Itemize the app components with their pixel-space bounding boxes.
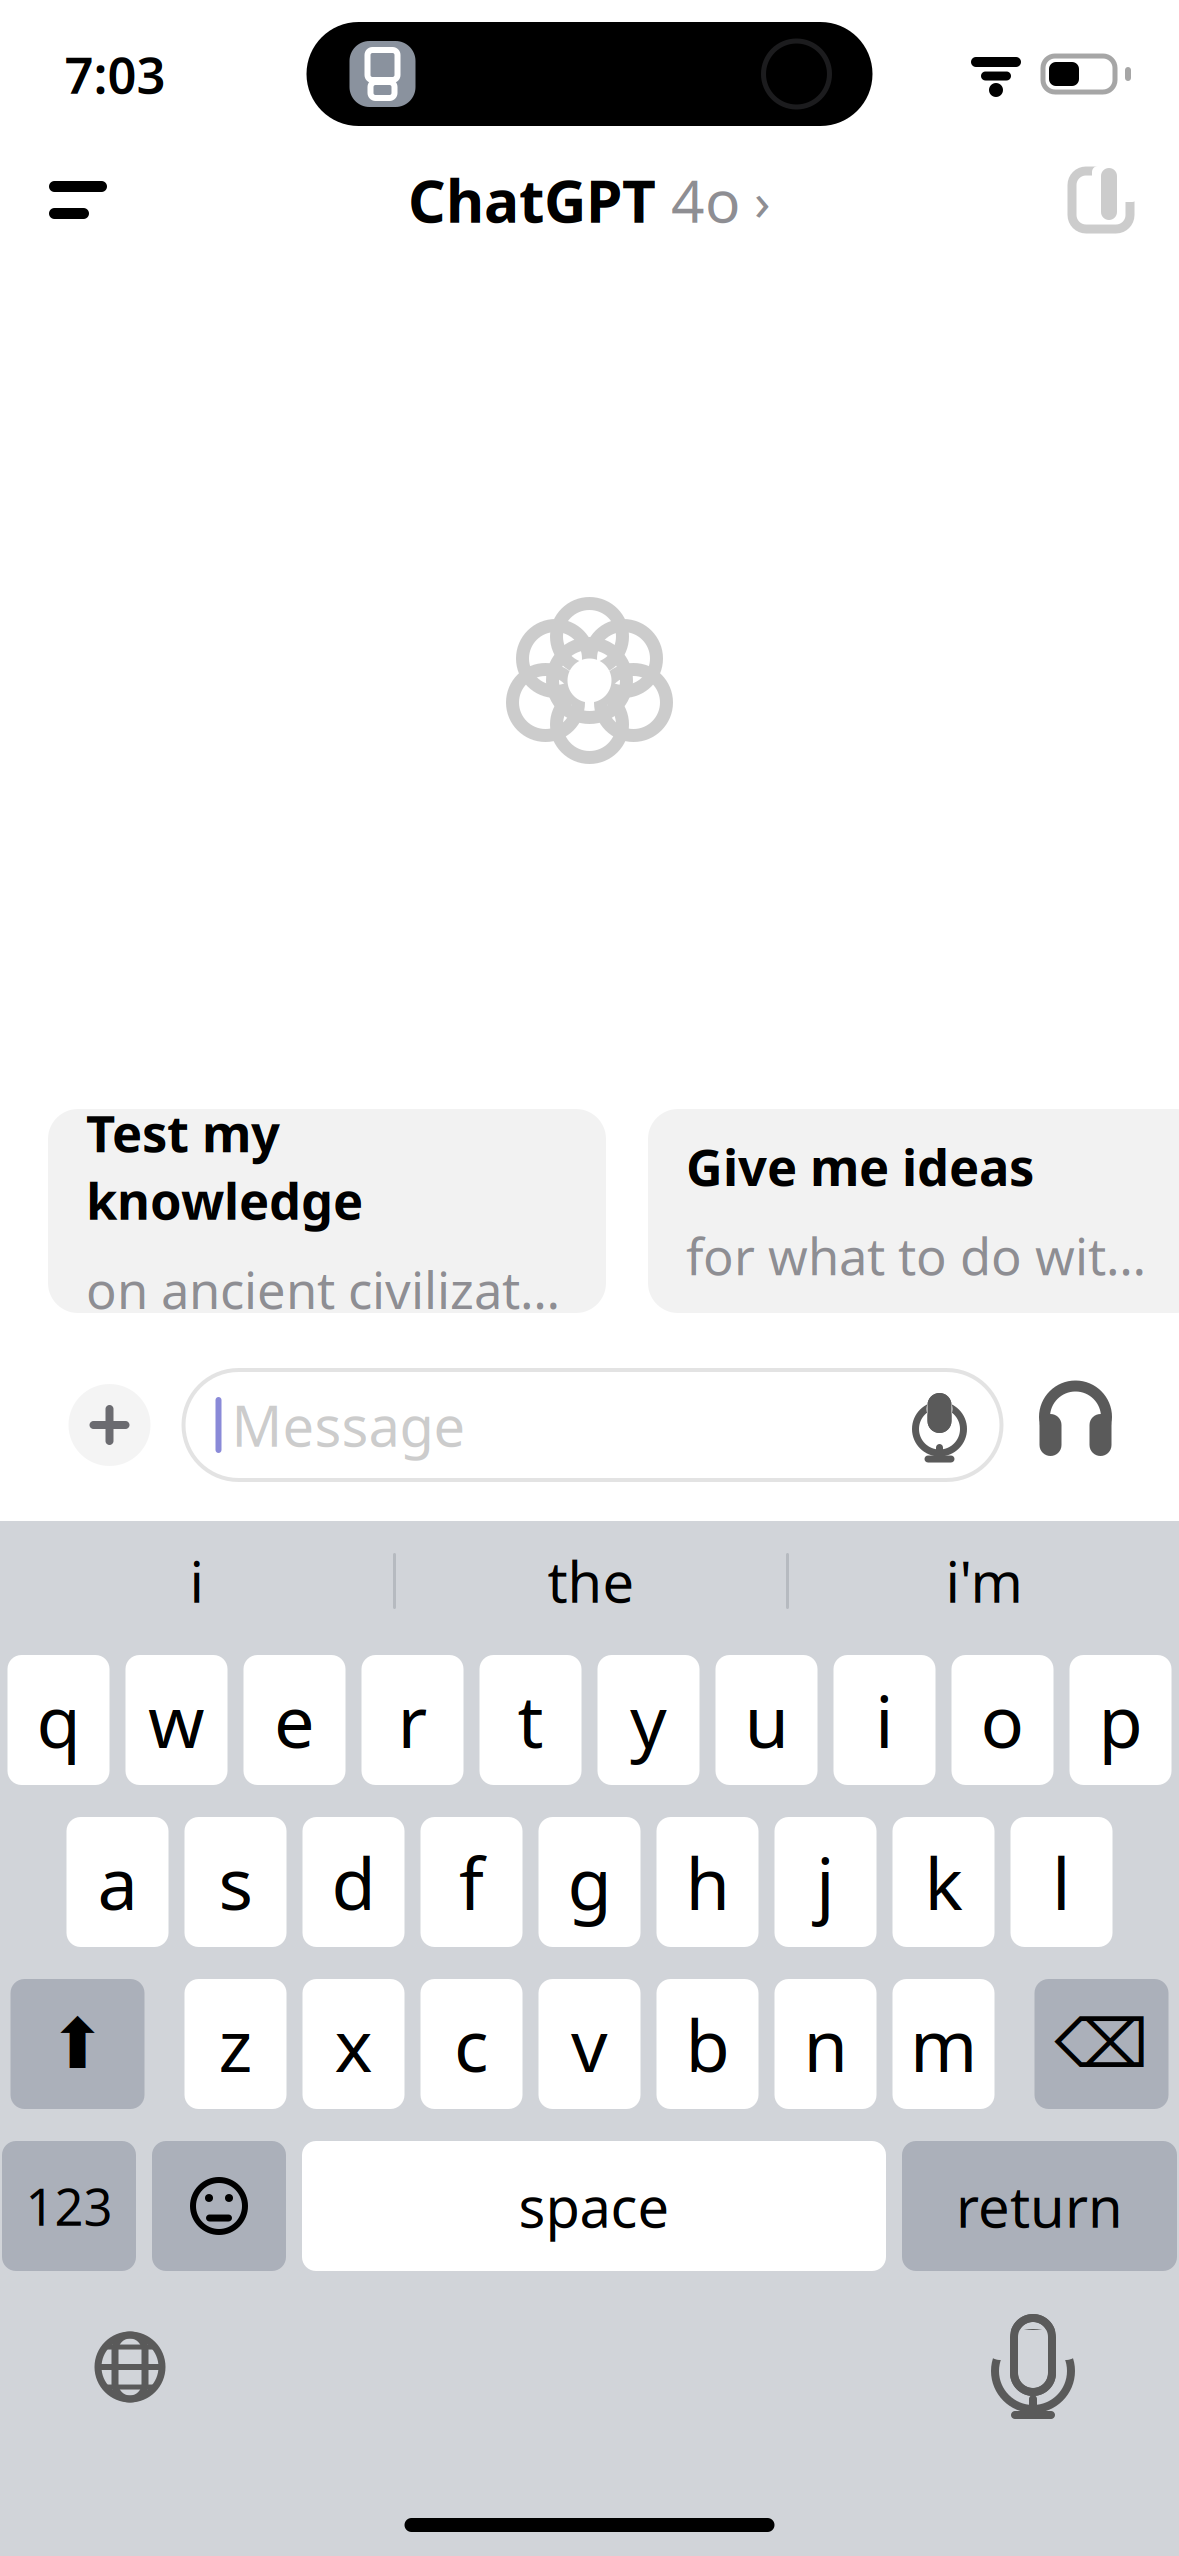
button[interactable]: x xyxy=(302,1979,404,2109)
button[interactable]: m xyxy=(892,1979,994,2109)
staticText: t xyxy=(517,1672,543,1768)
button[interactable]: c xyxy=(420,1979,522,2109)
button[interactable]: n xyxy=(774,1979,876,2109)
button[interactable]: s xyxy=(184,1817,286,1947)
staticText: ⬆ xyxy=(48,2005,106,2083)
button[interactable]: the xyxy=(396,1533,786,1629)
staticText: f xyxy=(459,1834,484,1930)
staticText: return xyxy=(956,2169,1123,2243)
staticText: on ancient civilizations xyxy=(86,1256,568,1323)
button[interactable]: Attach xyxy=(61,1377,157,1473)
staticText: i xyxy=(875,1672,894,1768)
button[interactable]: Emoji xyxy=(152,2141,286,2271)
button[interactable]: z xyxy=(184,1979,286,2109)
staticText: e xyxy=(274,1672,315,1768)
button[interactable]: k xyxy=(892,1817,994,1947)
button[interactable]: Change keyboard xyxy=(70,2307,190,2427)
button[interactable]: y xyxy=(597,1655,699,1785)
staticText: 7:03 xyxy=(64,40,165,108)
staticText: z xyxy=(218,1996,252,2092)
staticText: for what to do with my kids xyxy=(686,1222,1168,1289)
staticText: c xyxy=(454,1996,489,2092)
staticText: w xyxy=(148,1672,205,1768)
staticText: i xyxy=(189,1544,203,1618)
button[interactable]: l xyxy=(1010,1817,1112,1947)
button[interactable]: Message xyxy=(183,1370,1001,1480)
button[interactable]: i xyxy=(0,1533,393,1629)
staticText: x xyxy=(334,1996,372,2092)
staticText: y xyxy=(630,1672,667,1768)
button[interactable]: Give me ideas xyxy=(648,1109,1179,1313)
button[interactable]: i'm xyxy=(789,1533,1179,1629)
button[interactable]: r xyxy=(361,1655,463,1785)
button[interactable]: o xyxy=(951,1655,1053,1785)
staticText: n xyxy=(803,1996,847,2092)
button[interactable]: t xyxy=(479,1655,581,1785)
staticText: r xyxy=(397,1672,427,1768)
staticText: j xyxy=(816,1834,835,1930)
button[interactable]: Sidebar xyxy=(28,155,128,245)
staticText: i'm xyxy=(945,1544,1022,1618)
staticText: p xyxy=(1098,1672,1142,1768)
button[interactable]: h xyxy=(656,1817,758,1947)
staticText: ⌫ xyxy=(1054,2006,1148,2082)
staticText: l xyxy=(1052,1834,1071,1930)
staticText: d xyxy=(331,1834,375,1930)
button[interactable]: Delete xyxy=(1034,1979,1168,2109)
staticText: a xyxy=(97,1834,137,1930)
staticText: h xyxy=(685,1834,729,1930)
staticText: m xyxy=(910,1996,977,2092)
staticText: space xyxy=(518,2169,669,2243)
button[interactable]: 123 xyxy=(2,2141,136,2271)
button[interactable]: return xyxy=(902,2141,1177,2271)
staticText: 4o xyxy=(656,161,740,239)
button[interactable]: u xyxy=(715,1655,817,1785)
staticText: q xyxy=(36,1672,80,1768)
button[interactable]: v xyxy=(538,1979,640,2109)
button[interactable]: space xyxy=(302,2141,886,2271)
staticText: ChatGPT xyxy=(408,161,656,239)
staticText: v xyxy=(571,1996,608,2092)
button[interactable]: g xyxy=(538,1817,640,1947)
button[interactable]: Shift xyxy=(10,1979,144,2109)
staticText: b xyxy=(685,1996,729,2092)
button[interactable]: Dictation xyxy=(973,2307,1093,2427)
button[interactable]: f xyxy=(420,1817,522,1947)
button[interactable]: q xyxy=(7,1655,109,1785)
button[interactable]: d xyxy=(302,1817,404,1947)
button[interactable]: a xyxy=(66,1817,168,1947)
staticText: o xyxy=(980,1672,1024,1768)
button[interactable]: p xyxy=(1069,1655,1171,1785)
button[interactable]: Test my knowledge xyxy=(48,1109,606,1313)
button[interactable]: b xyxy=(656,1979,758,2109)
button[interactable]: New chat xyxy=(1051,155,1151,245)
staticText: g xyxy=(567,1834,611,1930)
staticText: Test my knowledge xyxy=(86,1099,363,1234)
button[interactable]: i xyxy=(833,1655,935,1785)
staticText: › xyxy=(740,165,771,235)
staticText: s xyxy=(218,1834,252,1930)
button[interactable]: Voice mode xyxy=(1027,1377,1123,1473)
staticText: Give me ideas xyxy=(686,1133,1034,1200)
staticText: the xyxy=(547,1544,634,1618)
button[interactable]: ChatGPT xyxy=(388,147,791,253)
button[interactable]: j xyxy=(774,1817,876,1947)
staticText: 123 xyxy=(25,2172,112,2240)
staticText: k xyxy=(924,1834,962,1930)
button[interactable]: e xyxy=(243,1655,345,1785)
button[interactable]: w xyxy=(125,1655,227,1785)
staticText: u xyxy=(744,1672,788,1768)
staticText: Message xyxy=(231,1388,465,1462)
